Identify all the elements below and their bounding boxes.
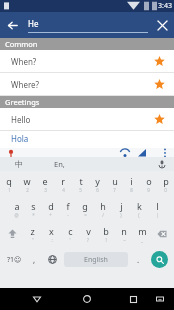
button[interactable]: Favorite (154, 114, 165, 125)
button[interactable]: v (79, 221, 97, 246)
button[interactable]: z (23, 221, 42, 246)
button[interactable]: Where? (0, 73, 174, 96)
staticText: l (156, 200, 159, 212)
button[interactable]: r (54, 171, 72, 196)
button[interactable]: When? (0, 50, 174, 73)
staticText: 0 (164, 187, 167, 193)
staticText: d (48, 200, 54, 212)
button[interactable]: k (130, 196, 148, 221)
staticText: y (95, 175, 100, 187)
staticText: c (68, 225, 73, 237)
staticText: | (156, 212, 159, 218)
button[interactable]: b (97, 221, 115, 246)
button[interactable]: p (157, 171, 174, 196)
button[interactable]: Shift (1, 221, 23, 246)
staticText: 6 (96, 187, 99, 193)
staticText: . (137, 254, 140, 265)
button[interactable]: o (140, 171, 157, 196)
button[interactable]: Backspace (151, 221, 173, 246)
button[interactable]: Change language (42, 246, 62, 273)
button[interactable]: Voice input (150, 157, 174, 171)
staticText: 中 (15, 159, 23, 169)
staticText: En, (54, 159, 65, 169)
staticText: t (79, 175, 83, 187)
staticText: h (100, 200, 106, 212)
staticText: ? (87, 237, 89, 243)
staticText: , (33, 254, 36, 265)
button[interactable]: n (115, 221, 133, 246)
staticText: Common (5, 39, 38, 49)
button[interactable]: Back (28, 290, 46, 308)
button[interactable]: Search (146, 246, 172, 273)
staticText: + (49, 212, 52, 218)
staticText: m (138, 225, 147, 237)
button[interactable]: u (106, 171, 123, 196)
staticText: = (84, 212, 87, 218)
button[interactable]: d (42, 196, 59, 221)
button[interactable]: g (76, 196, 94, 221)
staticText: a (14, 200, 20, 212)
button[interactable]: Home (78, 290, 96, 308)
staticText: 2 (26, 187, 29, 193)
button[interactable]: s (25, 196, 42, 221)
staticText: / (102, 212, 104, 218)
button[interactable]: He (28, 18, 148, 33)
staticText: o (146, 175, 152, 187)
staticText: r (61, 175, 65, 187)
staticText: ?1☺ (7, 255, 22, 265)
button[interactable]: a (8, 196, 25, 221)
staticText: _ (141, 237, 143, 243)
button[interactable]: Back (0, 13, 24, 37)
button[interactable]: h (94, 196, 112, 221)
staticText: i (130, 175, 133, 187)
button[interactable]: Favorite (154, 79, 165, 90)
button[interactable]: w (18, 171, 36, 196)
staticText: e (42, 175, 48, 187)
staticText: 1 (8, 187, 11, 193)
staticText: 3:43 (158, 1, 172, 11)
button[interactable]: Hide keyboard (152, 291, 168, 307)
button[interactable]: l (148, 196, 166, 221)
button[interactable]: . (130, 246, 146, 273)
staticText: f (66, 200, 70, 212)
button[interactable]: f (59, 196, 76, 221)
button[interactable]: 中 (0, 157, 38, 171)
staticText: 9 (147, 187, 150, 193)
staticText: g (82, 200, 88, 212)
button[interactable]: , (26, 246, 42, 273)
button[interactable]: t (72, 171, 89, 196)
button[interactable]: j (112, 196, 130, 221)
staticText: ' (69, 237, 71, 243)
staticText: Hola (11, 133, 29, 144)
staticText: Hello (11, 114, 154, 125)
staticText: 3 (44, 187, 47, 193)
button[interactable]: Clear (150, 13, 174, 37)
staticText: Greetings (5, 97, 40, 107)
button[interactable]: Recents (124, 290, 142, 308)
button[interactable]: y (89, 171, 106, 196)
staticText: ~ (123, 237, 126, 243)
button[interactable]: e (36, 171, 54, 196)
button[interactable]: i (123, 171, 140, 196)
button[interactable]: Hola (0, 131, 174, 148)
staticText: 5 (79, 187, 82, 193)
staticText: 8 (130, 187, 133, 193)
button[interactable]: English (64, 252, 128, 267)
staticText: n (121, 225, 127, 237)
staticText: x (49, 225, 54, 237)
button[interactable]: En, (38, 157, 80, 171)
button[interactable]: ?1☺ (2, 246, 26, 273)
button[interactable]: q (0, 171, 18, 196)
button[interactable]: Favorite (154, 56, 165, 67)
staticText: : (51, 237, 53, 243)
staticText: 4 (62, 187, 65, 193)
staticText: w (23, 175, 31, 187)
staticText: Where? (11, 79, 154, 90)
button[interactable]: x (42, 221, 61, 246)
button[interactable]: Hello (0, 108, 174, 131)
button[interactable]: m (133, 221, 151, 246)
staticText: ! (105, 237, 107, 243)
staticText: 7 (113, 187, 116, 193)
staticText: " (32, 237, 34, 243)
button[interactable]: c (61, 221, 79, 246)
